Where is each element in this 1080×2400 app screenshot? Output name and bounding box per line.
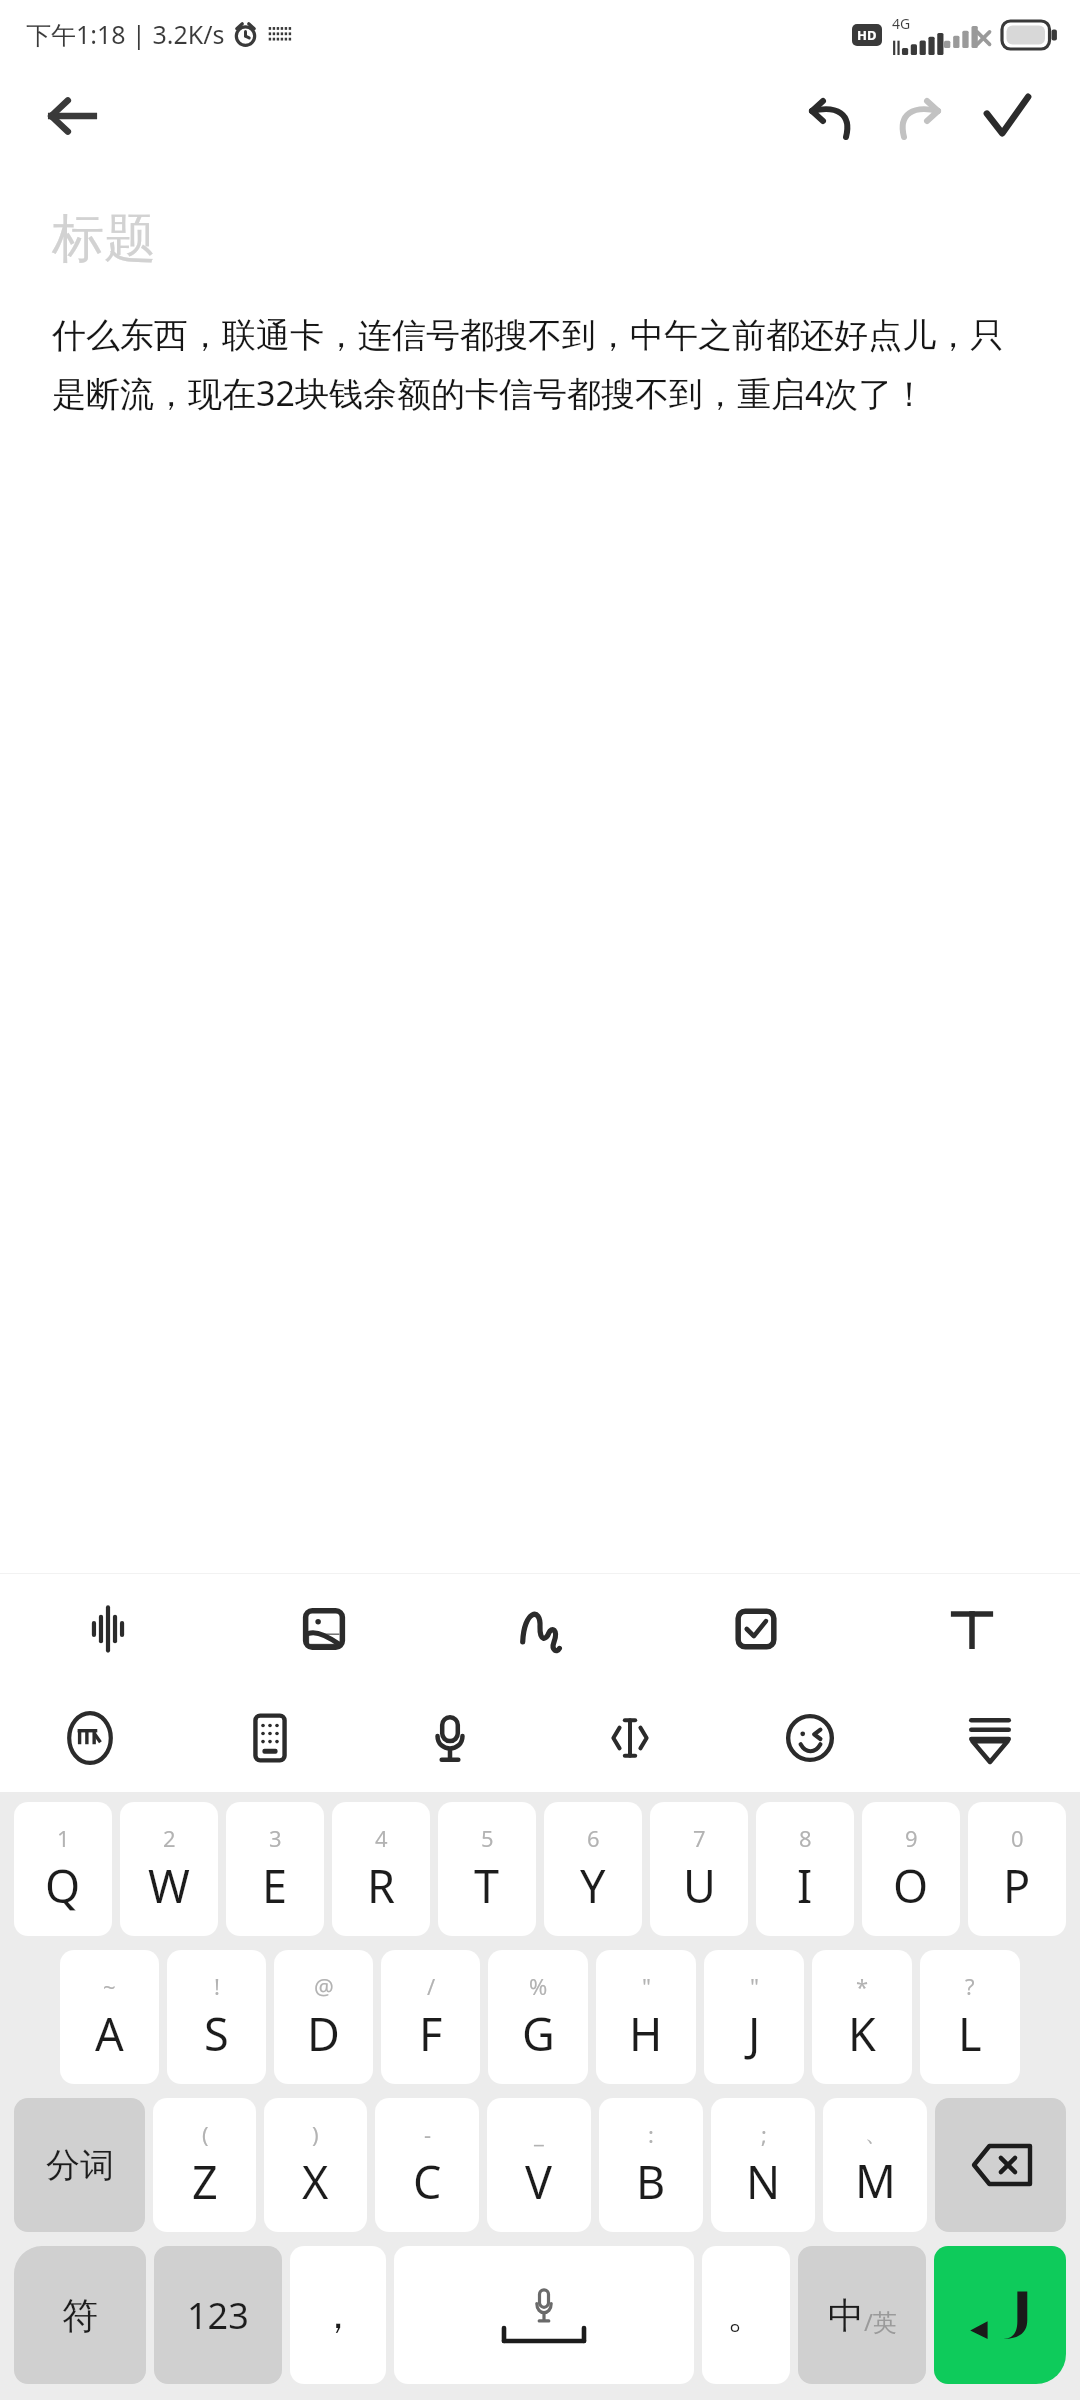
staticText: L bbox=[958, 2003, 982, 2064]
button[interactable]: Input method bbox=[0, 1684, 180, 1792]
button[interactable]: Backspace bbox=[935, 2098, 1066, 2232]
button[interactable]: 符 bbox=[14, 2246, 146, 2384]
button[interactable]: " bbox=[596, 1950, 696, 2084]
button[interactable]: Done bbox=[970, 79, 1044, 153]
button[interactable]: ， bbox=[290, 2246, 386, 2384]
button[interactable]: 中 bbox=[798, 2246, 926, 2384]
button[interactable]: - bbox=[375, 2098, 479, 2232]
button[interactable]: 7 bbox=[650, 1802, 748, 1936]
staticText: 0 bbox=[1011, 1823, 1024, 1853]
button[interactable]: ! bbox=[167, 1950, 266, 2084]
staticText: W bbox=[148, 1855, 190, 1916]
button[interactable]: 5 bbox=[438, 1802, 536, 1936]
button[interactable]: Hide keyboard bbox=[900, 1684, 1080, 1792]
staticText: ? bbox=[965, 1971, 975, 2001]
staticText: Q bbox=[45, 1855, 81, 1916]
staticText: R bbox=[367, 1855, 395, 1916]
button[interactable]: _ bbox=[487, 2098, 591, 2232]
staticText: K bbox=[848, 2003, 876, 2064]
staticText: 。 bbox=[727, 2291, 765, 2339]
staticText: 7 bbox=[693, 1823, 706, 1853]
staticText: 5 bbox=[481, 1823, 494, 1853]
staticText: ; bbox=[761, 2119, 767, 2149]
button[interactable]: " bbox=[704, 1950, 804, 2084]
button[interactable]: 0 bbox=[968, 1802, 1066, 1936]
staticText: I bbox=[797, 1855, 813, 1916]
staticText: 下午1:18 | 3.2K/s bbox=[26, 17, 225, 51]
staticText: F bbox=[419, 2003, 443, 2064]
staticText: Z bbox=[192, 2151, 218, 2212]
staticText: 4 bbox=[375, 1823, 388, 1853]
button[interactable]: % bbox=[488, 1950, 588, 2084]
button[interactable]: Image bbox=[216, 1574, 432, 1684]
staticText: 符 bbox=[62, 2293, 98, 2338]
button[interactable]: Undo bbox=[794, 79, 868, 153]
staticText: O bbox=[893, 1855, 929, 1916]
button[interactable]: / bbox=[381, 1950, 480, 2084]
staticText: M bbox=[855, 2150, 896, 2211]
staticText: ~ bbox=[103, 1971, 116, 2001]
button[interactable]: 、 bbox=[823, 2098, 927, 2232]
staticText: U bbox=[683, 1855, 716, 1916]
button[interactable]: Text style bbox=[864, 1574, 1080, 1684]
button[interactable]: * bbox=[812, 1950, 912, 2084]
button[interactable]: Keyboard layout bbox=[180, 1684, 360, 1792]
button[interactable]: ( bbox=[153, 2098, 256, 2232]
button[interactable]: 分词 bbox=[14, 2098, 145, 2232]
button[interactable]: Checklist bbox=[648, 1574, 864, 1684]
button[interactable]: Emoji bbox=[720, 1684, 900, 1792]
staticText: J bbox=[748, 2003, 761, 2064]
button[interactable]: Handwriting bbox=[432, 1574, 648, 1684]
staticText: 、 bbox=[865, 2120, 887, 2148]
button[interactable]: Redo bbox=[882, 79, 956, 153]
staticText: - bbox=[424, 2119, 432, 2149]
staticText: 分词 bbox=[46, 2144, 114, 2187]
staticText: ( bbox=[202, 2119, 209, 2149]
button[interactable]: ~ bbox=[60, 1950, 159, 2084]
button[interactable]: : bbox=[599, 2098, 703, 2232]
staticText: B bbox=[636, 2151, 666, 2212]
staticText: V bbox=[525, 2151, 553, 2212]
button[interactable]: Enter bbox=[934, 2246, 1066, 2384]
button[interactable]: 3 bbox=[226, 1802, 324, 1936]
button[interactable]: 123 bbox=[154, 2246, 282, 2384]
staticText: H bbox=[629, 2003, 663, 2064]
button[interactable]: ? bbox=[920, 1950, 1020, 2084]
staticText: 9 bbox=[905, 1823, 918, 1853]
button[interactable]: ) bbox=[264, 2098, 367, 2232]
button[interactable]: 6 bbox=[544, 1802, 642, 1936]
button[interactable]: Voice bbox=[0, 1574, 216, 1684]
staticText: 2 bbox=[163, 1823, 176, 1853]
staticText: C bbox=[413, 2151, 442, 2212]
staticText: X bbox=[302, 2151, 329, 2212]
staticText: P bbox=[1003, 1855, 1031, 1916]
staticText: Y bbox=[580, 1855, 606, 1916]
staticText: 标题 bbox=[52, 206, 156, 272]
staticText: ) bbox=[312, 2119, 319, 2149]
button[interactable]: 9 bbox=[862, 1802, 960, 1936]
button[interactable]: 1 bbox=[14, 1802, 112, 1936]
button[interactable]: Voice input bbox=[360, 1684, 540, 1792]
staticText: : bbox=[648, 2119, 654, 2149]
staticText: G bbox=[522, 2003, 555, 2064]
staticText: 4G bbox=[892, 14, 911, 33]
staticText: _ bbox=[534, 2119, 544, 2149]
staticText: @ bbox=[314, 1971, 334, 2001]
button[interactable]: 2 bbox=[120, 1802, 218, 1936]
staticText: E bbox=[262, 1855, 288, 1916]
button[interactable]: @ bbox=[274, 1950, 373, 2084]
staticText: ， bbox=[319, 2291, 357, 2339]
button[interactable]: 4 bbox=[332, 1802, 430, 1936]
staticText: 3 bbox=[269, 1823, 282, 1853]
button[interactable]: ; bbox=[711, 2098, 815, 2232]
button[interactable]: 8 bbox=[756, 1802, 854, 1936]
staticText: 中 bbox=[828, 2293, 864, 2338]
staticText: 6 bbox=[587, 1823, 600, 1853]
staticText: ! bbox=[214, 1971, 220, 2001]
button[interactable]: Cursor bbox=[540, 1684, 720, 1792]
staticText: A bbox=[95, 2003, 124, 2064]
button[interactable]: 。 bbox=[702, 2246, 790, 2384]
button[interactable]: Space, voice input bbox=[394, 2246, 694, 2384]
button[interactable]: Back bbox=[38, 82, 106, 150]
staticText: /英 bbox=[864, 2305, 897, 2338]
